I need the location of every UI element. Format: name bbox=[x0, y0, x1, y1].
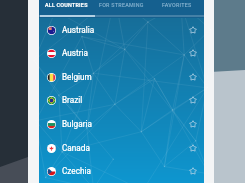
staticText: Australia bbox=[62, 25, 95, 35]
staticText: Czechia bbox=[62, 166, 91, 176]
staticText: Canada bbox=[62, 143, 90, 153]
staticText: FAVORITES bbox=[162, 2, 192, 8]
button[interactable]: Favorite Bulgaria bbox=[187, 118, 199, 130]
staticText: FOR STREAMING bbox=[99, 2, 144, 8]
button[interactable]: ALL COUNTRIES bbox=[39, 0, 94, 10]
button[interactable]: Austria bbox=[39, 41, 204, 65]
staticText: Belgium bbox=[62, 72, 92, 82]
button[interactable]: Bulgaria bbox=[39, 112, 204, 136]
button[interactable]: Canada bbox=[39, 136, 204, 160]
button[interactable]: Brazil bbox=[39, 88, 204, 112]
staticText: Bulgaria bbox=[62, 119, 92, 129]
button[interactable]: Favorite Belgium bbox=[187, 71, 199, 83]
button[interactable]: Australia bbox=[39, 18, 204, 42]
button[interactable]: Czechia bbox=[39, 159, 204, 183]
button[interactable]: Belgium bbox=[39, 65, 204, 89]
button[interactable]: Favorite Canada bbox=[187, 142, 199, 154]
button[interactable]: FOR STREAMING bbox=[94, 0, 149, 10]
button[interactable]: Favorite Brazil bbox=[187, 94, 199, 106]
button[interactable]: Favorite Austria bbox=[187, 47, 199, 59]
button[interactable]: Favorite Australia bbox=[187, 24, 199, 36]
staticText: Brazil bbox=[62, 95, 83, 105]
button[interactable]: Favorite Czechia bbox=[187, 165, 199, 177]
staticText: Austria bbox=[62, 48, 88, 58]
button[interactable]: FAVORITES bbox=[149, 0, 204, 10]
staticText: ALL COUNTRIES bbox=[45, 2, 88, 8]
